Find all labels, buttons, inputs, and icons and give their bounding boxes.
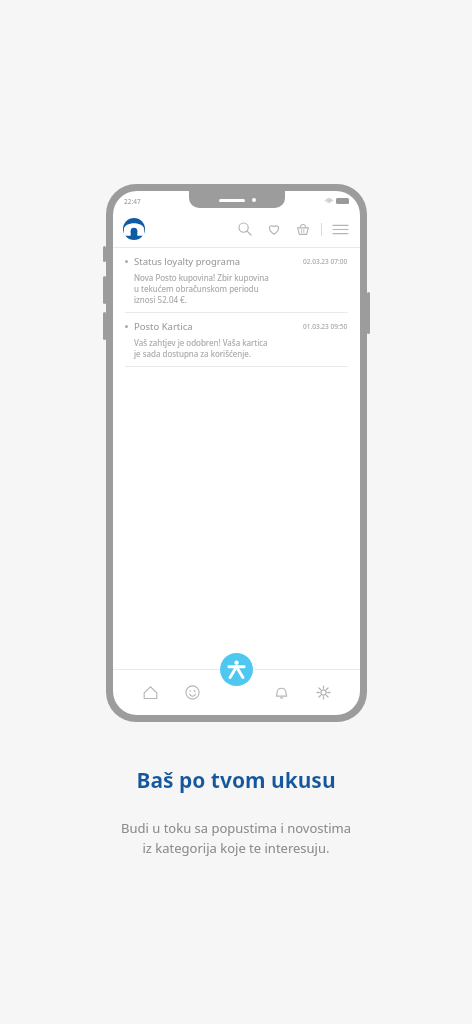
staticText: Budi u toku sa popustima i novostima iz … bbox=[121, 819, 351, 857]
button[interactable]: Offers bbox=[179, 679, 205, 705]
button[interactable]: Menu bbox=[330, 219, 350, 239]
button[interactable]: Home logo bbox=[123, 218, 145, 240]
button[interactable]: Basket bbox=[293, 219, 313, 239]
button[interactable]: Favorites bbox=[264, 219, 284, 239]
staticText: Nova Posto kupovina! Zbir kupovina u tek… bbox=[134, 272, 269, 305]
staticText: Vaš zahtjev je odobren! Vaša kartica je … bbox=[134, 337, 268, 359]
staticText: Posto Kartica bbox=[134, 320, 193, 333]
button[interactable]: Status loyalty programa bbox=[113, 248, 360, 312]
staticText: 01.03.23 09:50 bbox=[303, 322, 348, 331]
staticText: 22:47 bbox=[124, 197, 141, 206]
button[interactable]: Home bbox=[137, 679, 163, 705]
button[interactable]: Notifications bbox=[268, 679, 294, 705]
staticText: Baš po tvom ukusu bbox=[136, 766, 336, 795]
button[interactable]: Search bbox=[235, 219, 255, 239]
staticText: Status loyalty programa bbox=[134, 255, 241, 268]
button[interactable]: Posto Kartica bbox=[113, 313, 360, 366]
button[interactable]: Settings bbox=[310, 679, 336, 705]
staticText: 02.03.23 07:00 bbox=[303, 257, 348, 266]
button[interactable]: Profile bbox=[220, 653, 253, 686]
